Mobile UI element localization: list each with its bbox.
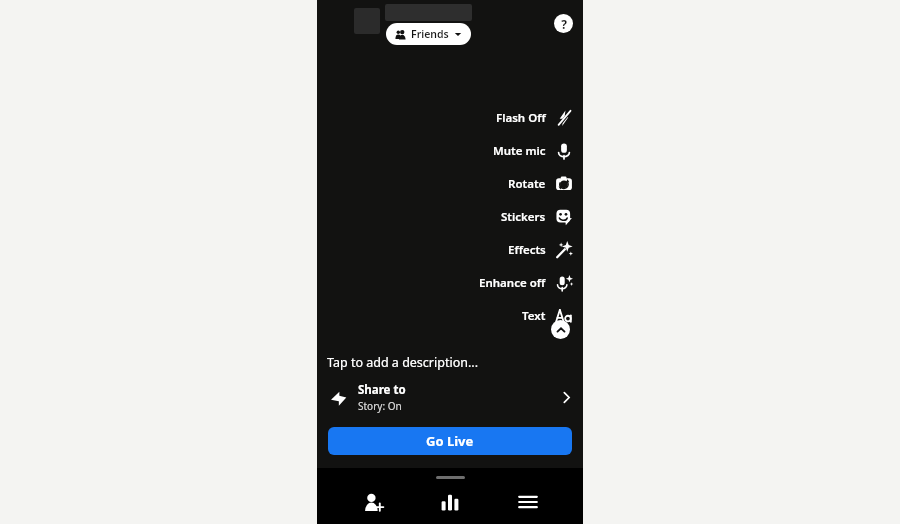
button[interactable]: Friends bbox=[386, 23, 471, 45]
staticText: Stickers bbox=[501, 209, 546, 225]
staticText: Enhance off bbox=[479, 275, 546, 291]
staticText: Effects bbox=[508, 242, 546, 258]
staticText: Friends bbox=[411, 27, 449, 41]
button[interactable]: Back bbox=[347, 10, 373, 36]
button[interactable]: Tap to add a description... bbox=[317, 352, 583, 373]
button[interactable]: Text bbox=[522, 299, 583, 332]
button[interactable]: Add friends bbox=[351, 480, 395, 524]
button[interactable]: Effects bbox=[508, 233, 583, 266]
staticText: Tap to add a description... bbox=[327, 354, 479, 371]
button[interactable]: Enhance off bbox=[479, 266, 583, 299]
staticText: Share to bbox=[358, 382, 406, 398]
button[interactable]: Mute mic bbox=[493, 134, 583, 167]
button[interactable]: Insights bbox=[428, 480, 472, 524]
staticText: Flash Off bbox=[496, 110, 546, 126]
button[interactable]: Go Live bbox=[328, 427, 572, 455]
button[interactable]: Collapse bbox=[551, 320, 570, 339]
button[interactable]: Stickers bbox=[501, 200, 583, 233]
staticText: Text bbox=[522, 308, 546, 324]
button[interactable]: Menu bbox=[506, 480, 550, 524]
staticText: ? bbox=[561, 16, 567, 32]
button[interactable]: Rotate bbox=[508, 167, 583, 200]
staticText: Story: On bbox=[358, 399, 402, 413]
button[interactable]: Share to bbox=[317, 380, 583, 415]
button[interactable]: Help bbox=[554, 14, 573, 33]
button[interactable]: Flash Off bbox=[496, 101, 583, 134]
staticText: Mute mic bbox=[493, 143, 546, 159]
staticText: Go Live bbox=[426, 432, 474, 450]
staticText: Rotate bbox=[508, 176, 546, 192]
